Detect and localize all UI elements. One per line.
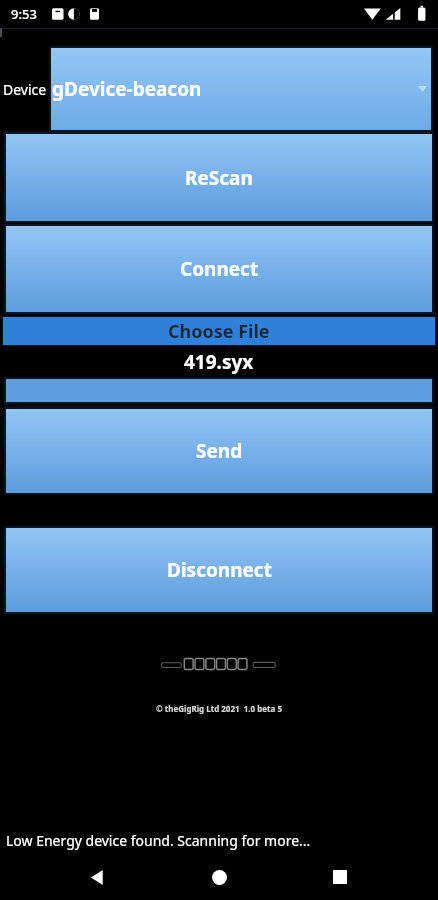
- button[interactable]: ReScan: [4, 132, 434, 223]
- staticText: Device: [3, 80, 47, 99]
- staticText: ReScan: [185, 165, 253, 191]
- staticText: Disconnect: [167, 557, 272, 583]
- staticText: 419.syx: [184, 349, 254, 375]
- button[interactable]: Disconnect: [4, 526, 434, 614]
- staticText: Choose File: [168, 319, 270, 344]
- staticText: gDevice-beacon: [52, 76, 202, 102]
- button[interactable]: Choose File: [2, 316, 436, 346]
- button[interactable]: Home: [196, 854, 242, 900]
- staticText: 9:53: [11, 5, 37, 23]
- staticText: © theGigRig Ltd 2021 1.0 beta 5: [156, 703, 282, 714]
- staticText: Connect: [180, 256, 259, 282]
- button[interactable]: Send: [4, 407, 434, 495]
- button[interactable]: Back: [75, 854, 121, 900]
- staticText: Send: [196, 438, 243, 464]
- staticText: Low Energy device found. Scanning for mo…: [6, 831, 311, 850]
- button[interactable]: gDevice-beacon: [49, 46, 433, 132]
- button[interactable]: Connect: [4, 224, 434, 314]
- button[interactable]: Recent apps: [317, 854, 363, 900]
